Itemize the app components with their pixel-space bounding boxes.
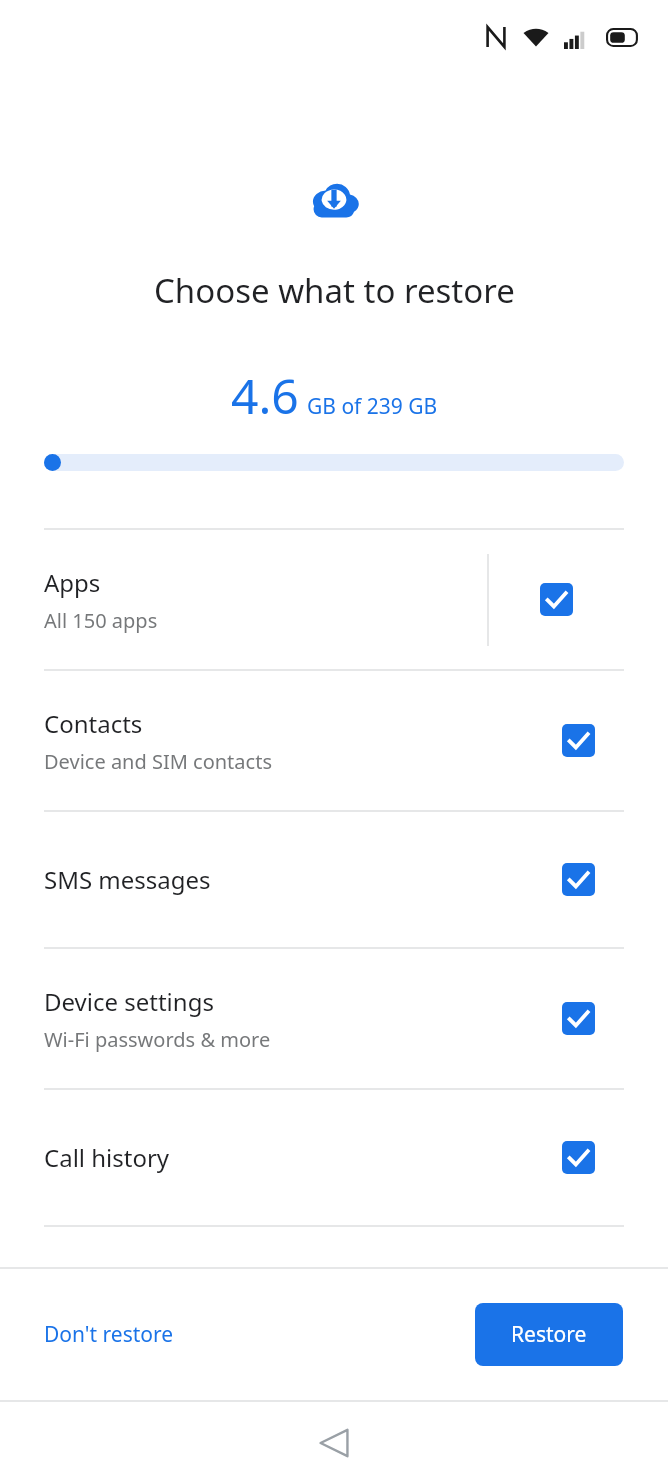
staticText: Apps — [44, 566, 101, 599]
staticText: Device settings — [44, 985, 214, 1018]
staticText: All 150 apps — [44, 607, 158, 634]
staticText: Restore — [511, 1320, 587, 1349]
staticText: Choose what to restore — [154, 268, 515, 313]
staticText: Wi-Fi passwords & more — [44, 1026, 271, 1053]
button[interactable]: Back — [299, 1408, 369, 1478]
staticText: SMS messages — [44, 863, 211, 896]
button[interactable]: Apps — [0, 530, 668, 669]
button[interactable]: Contacts — [0, 671, 668, 810]
staticText: Contacts — [44, 707, 143, 740]
staticText: Call history — [44, 1141, 170, 1174]
button[interactable]: SMS messages — [0, 812, 668, 947]
button[interactable]: Restore — [475, 1303, 623, 1366]
button[interactable]: Don't restore — [26, 1306, 192, 1363]
button[interactable]: Call history — [0, 1090, 668, 1225]
staticText: Device and SIM contacts — [44, 748, 272, 775]
staticText: GB of 239 GB — [307, 392, 438, 421]
staticText: 4.6 — [231, 363, 299, 428]
button[interactable]: Device settings — [0, 949, 668, 1088]
staticText: Don't restore — [44, 1320, 174, 1349]
